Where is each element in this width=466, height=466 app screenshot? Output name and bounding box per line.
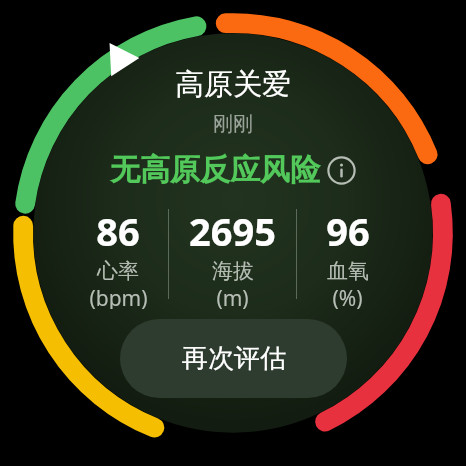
- staticText: 刚刚: [213, 112, 253, 137]
- button[interactable]: 无高原反应风险: [106, 151, 360, 189]
- button[interactable]: 86: [68, 205, 168, 309]
- other: 详情: [327, 156, 356, 185]
- button[interactable]: 2695: [169, 205, 296, 309]
- staticText: 再次评估: [182, 342, 286, 375]
- staticText: 海拔: [212, 258, 254, 284]
- staticText: 86: [96, 205, 140, 257]
- staticText: 无高原反应风险: [110, 151, 320, 189]
- staticText: 2695: [189, 205, 276, 257]
- button[interactable]: 再次评估: [120, 319, 347, 398]
- staticText: 96: [326, 205, 370, 257]
- staticText: (bpm): [89, 284, 148, 309]
- button[interactable]: 96: [297, 205, 398, 309]
- staticText: (m): [216, 284, 249, 309]
- staticText: 心率: [97, 258, 139, 284]
- staticText: (%): [332, 284, 363, 309]
- staticText: 高原关爱: [175, 66, 291, 103]
- staticText: 血氧: [327, 258, 369, 284]
